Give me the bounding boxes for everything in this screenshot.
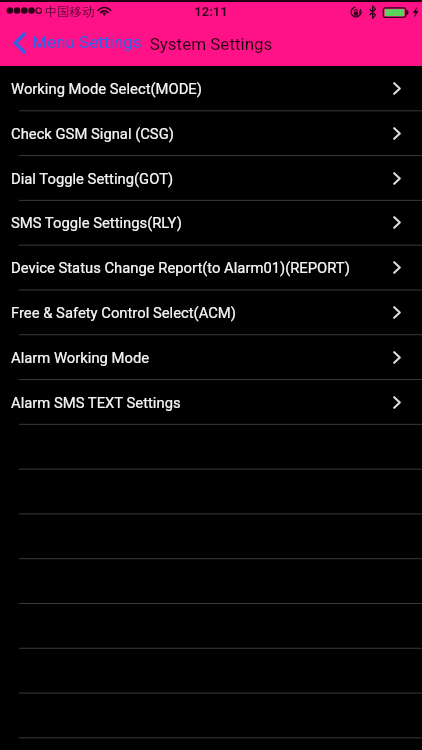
other: Open Dial Toggle Setting(GOT): [393, 172, 401, 185]
button[interactable]: Dial Toggle Setting(GOT): [0, 156, 422, 201]
other: Open Alarm Working Mode: [393, 351, 401, 364]
button[interactable]: Alarm Working Mode: [0, 335, 422, 380]
button[interactable]: [0, 693, 422, 738]
button[interactable]: [0, 514, 422, 559]
button[interactable]: Alarm SMS TEXT Settings: [0, 380, 422, 425]
staticText: Free & Safety Control Select(ACM): [11, 304, 236, 321]
staticText: 12:11: [0, 4, 422, 19]
other: Open Alarm SMS TEXT Settings: [393, 396, 401, 409]
button[interactable]: [0, 559, 422, 604]
button[interactable]: Working Mode Select(MODE): [0, 66, 422, 111]
button[interactable]: Check GSM Signal (CSG): [0, 111, 422, 156]
other: Open Free & Safety Control Select(ACM): [393, 306, 401, 319]
staticText: Dial Toggle Setting(GOT): [11, 170, 174, 187]
staticText: Menu Settings: [32, 32, 142, 52]
staticText: Device Status Change Report(to Alarm01)(…: [11, 259, 350, 276]
button[interactable]: Menu Settings: [2, 27, 150, 57]
staticText: Check GSM Signal (CSG): [11, 125, 174, 142]
staticText: Working Mode Select(MODE): [11, 80, 202, 97]
other: Open SMS Toggle Settings(RLY): [393, 216, 401, 229]
staticText: SMS Toggle Settings(RLY): [11, 214, 182, 231]
button[interactable]: SMS Toggle Settings(RLY): [0, 200, 422, 245]
button[interactable]: Device Status Change Report(to Alarm01)(…: [0, 245, 422, 290]
staticText: Alarm SMS TEXT Settings: [11, 394, 181, 411]
staticText: Alarm Working Mode: [11, 349, 150, 366]
button[interactable]: [0, 603, 422, 648]
button[interactable]: [0, 648, 422, 693]
other: Open Device Status Change Report(to Alar…: [393, 261, 401, 274]
button[interactable]: [0, 469, 422, 514]
button[interactable]: [0, 424, 422, 469]
staticText: 中国移动: [45, 4, 95, 19]
other: Open Check GSM Signal (CSG): [393, 127, 401, 140]
other: Open Working Mode Select(MODE): [393, 82, 401, 95]
button[interactable]: Free & Safety Control Select(ACM): [0, 290, 422, 335]
staticText: System Settings: [0, 34, 422, 54]
